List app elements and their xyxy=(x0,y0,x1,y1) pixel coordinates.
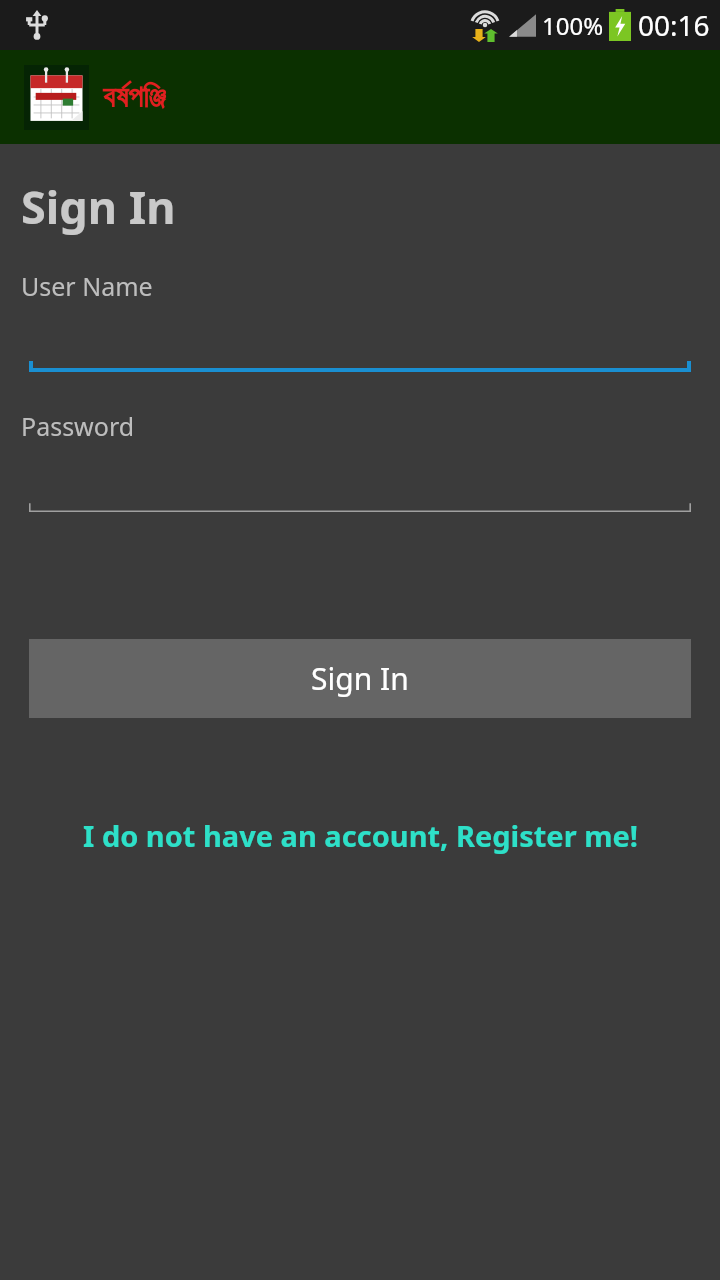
staticText: Sign In xyxy=(311,658,409,699)
staticText: 100% xyxy=(542,9,604,42)
button[interactable] xyxy=(0,358,720,372)
staticText: বর্ষপঞ্জি xyxy=(103,83,166,113)
staticText: 00:16 xyxy=(638,6,710,44)
staticText: Password xyxy=(21,409,135,443)
staticText: User Name xyxy=(21,269,153,303)
button[interactable] xyxy=(0,498,720,512)
staticText: Sign In xyxy=(21,176,176,237)
button[interactable]: I do not have an account, Register me! xyxy=(0,816,720,855)
staticText: I do not have an account, Register me! xyxy=(83,816,638,855)
button[interactable]: Sign In xyxy=(29,639,691,718)
